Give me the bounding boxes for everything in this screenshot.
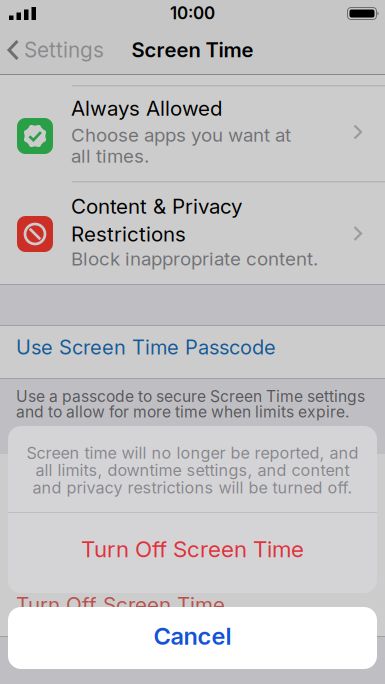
button[interactable]: Settings (0, 39, 104, 65)
staticText: all times. (71, 145, 149, 167)
staticText: all limits, downtime settings, and conte… (35, 460, 349, 480)
button[interactable]: Cancel (8, 607, 377, 669)
staticText: Settings (24, 37, 104, 63)
staticText: and privacy restrictions will be turned … (32, 478, 352, 497)
staticText: Turn Off Screen Time (16, 592, 225, 617)
button[interactable]: Always Allowed (0, 86, 385, 181)
staticText: Screen time will no longer be reported, … (26, 443, 358, 462)
staticText: Cancel (153, 622, 231, 650)
staticText: Screen Time (131, 38, 253, 62)
staticText: Use a passcode to secure Screen Time set… (16, 387, 365, 406)
staticText: Use Screen Time Passcode (16, 335, 276, 359)
button[interactable]: Content & Privacy (0, 182, 385, 284)
staticText: Turn Off Screen Time (81, 535, 304, 562)
staticText: Choose apps you want at (71, 124, 291, 146)
staticText: Restrictions (71, 222, 186, 246)
staticText: and to allow for more time when limits e… (16, 402, 349, 421)
staticText: 10:00 (170, 3, 215, 23)
staticText: Content & Privacy (71, 194, 242, 219)
staticText: Always Allowed (71, 96, 223, 121)
staticText: Block inappropriate content. (71, 247, 318, 270)
button[interactable]: Turn Off Screen Time (8, 513, 377, 593)
button[interactable]: Use Screen Time Passcode (0, 326, 385, 378)
